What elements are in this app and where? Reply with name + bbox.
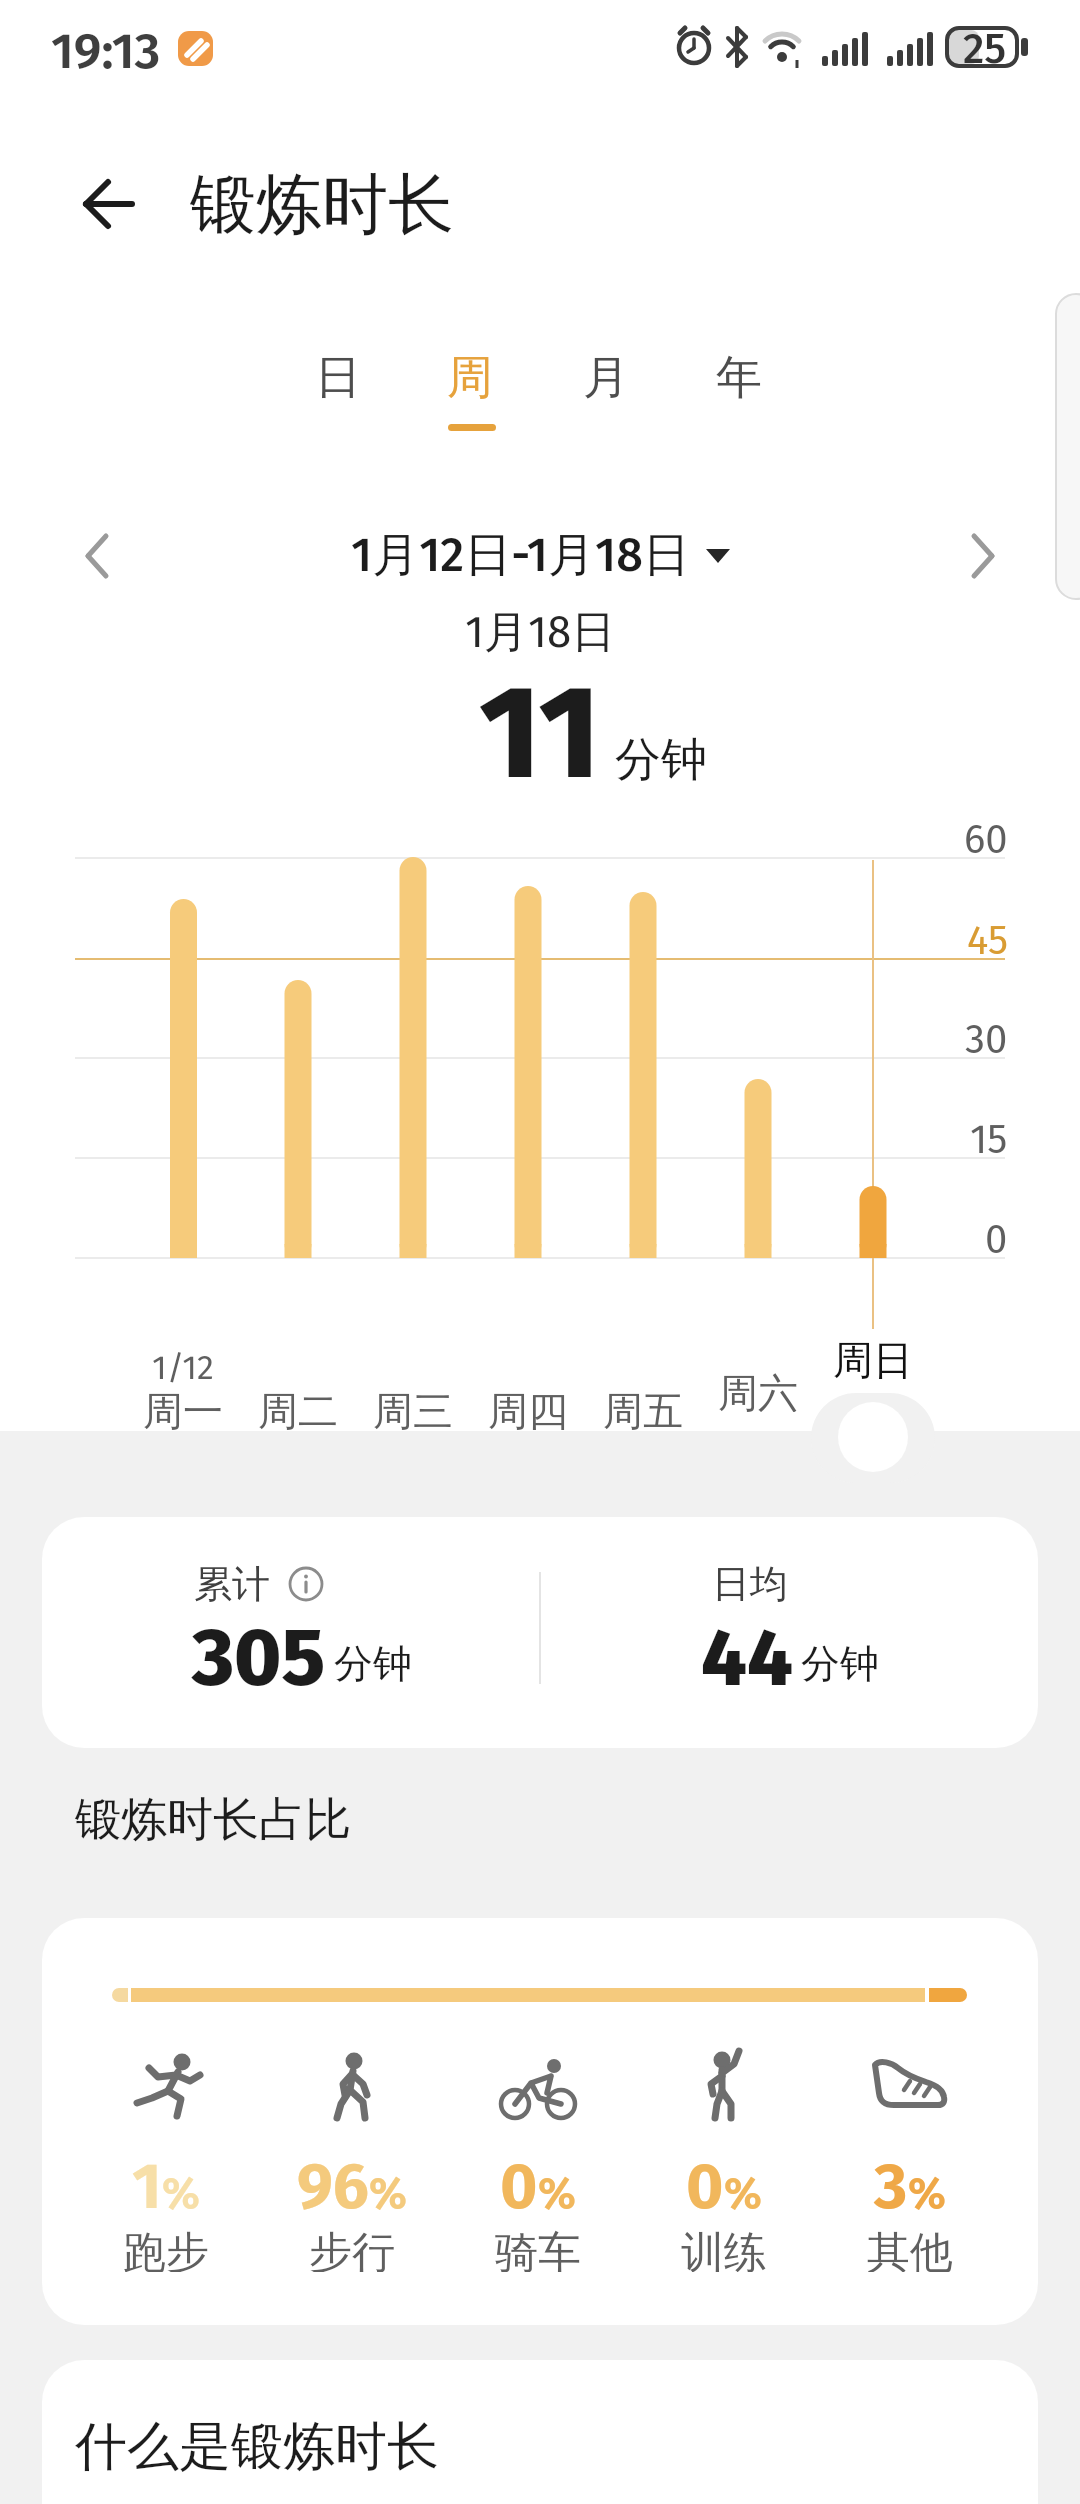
button[interactable]	[70, 528, 130, 584]
staticText: 训练	[681, 2226, 767, 2272]
staticText: 锻炼时长	[190, 163, 454, 241]
staticText: 什么是锻炼时长	[75, 2414, 439, 2480]
staticText: %	[369, 2167, 407, 2220]
staticText: 周三	[373, 1386, 453, 1430]
staticText: 45	[967, 917, 1008, 961]
button[interactable]	[288, 1566, 324, 1602]
staticText: 30	[965, 1016, 1008, 1060]
button[interactable]	[70, 173, 145, 235]
button[interactable]	[42, 1517, 1038, 1748]
staticText: 周一	[143, 1386, 223, 1430]
staticText: 1月12日-1月18日	[351, 526, 690, 585]
staticText: 日	[315, 349, 361, 407]
staticText: %	[724, 2167, 762, 2220]
staticText: 年	[716, 349, 762, 407]
staticText: 日均	[712, 1560, 788, 1604]
button[interactable]: 月	[544, 347, 668, 409]
staticText: 周日	[833, 1335, 913, 1379]
staticText: 44	[701, 1610, 793, 1706]
staticText: 分钟	[801, 1639, 879, 1688]
staticText: 305	[192, 1610, 326, 1706]
staticText: 1	[132, 2148, 162, 2225]
button[interactable]	[950, 528, 1010, 584]
staticText: 周二	[258, 1386, 338, 1430]
staticText: 11	[479, 655, 601, 812]
staticText: 25	[963, 24, 1007, 74]
staticText: 1月18日	[465, 605, 616, 660]
staticText: %	[908, 2167, 946, 2220]
staticText: 锻炼时长占比	[75, 1791, 351, 1849]
staticText: 0	[686, 2148, 724, 2225]
staticText: 骑车	[495, 2226, 581, 2272]
staticText: 分钟	[334, 1639, 412, 1688]
button[interactable]	[42, 1918, 1038, 2325]
staticText: 周五	[603, 1386, 683, 1430]
staticText: 跑步	[123, 2226, 209, 2272]
staticText: 周四	[488, 1386, 568, 1430]
staticText: 月	[583, 349, 629, 407]
button[interactable]	[42, 2360, 1038, 2504]
button[interactable]: 周	[408, 347, 532, 409]
staticText: 步行	[309, 2226, 395, 2272]
staticText: 周	[447, 349, 493, 407]
staticText: 累计	[194, 1560, 270, 1604]
staticText: 15	[970, 1116, 1008, 1160]
staticText: 96	[297, 2148, 369, 2225]
staticText: 19:13	[51, 21, 161, 73]
staticText: 60	[964, 816, 1008, 860]
staticText: %	[162, 2167, 200, 2220]
staticText: 0	[500, 2148, 538, 2225]
staticText: %	[538, 2167, 576, 2220]
staticText: 0	[985, 1216, 1008, 1260]
staticText: 分钟	[615, 731, 707, 789]
staticText: 3	[874, 2148, 908, 2225]
staticText: 其他	[867, 2226, 953, 2272]
staticText: 周六	[718, 1368, 798, 1412]
button[interactable]: 年	[677, 347, 801, 409]
staticText: 1/12	[152, 1347, 214, 1388]
button[interactable]: 日	[276, 347, 400, 409]
button[interactable]: 1月12日-1月18日	[310, 520, 770, 590]
